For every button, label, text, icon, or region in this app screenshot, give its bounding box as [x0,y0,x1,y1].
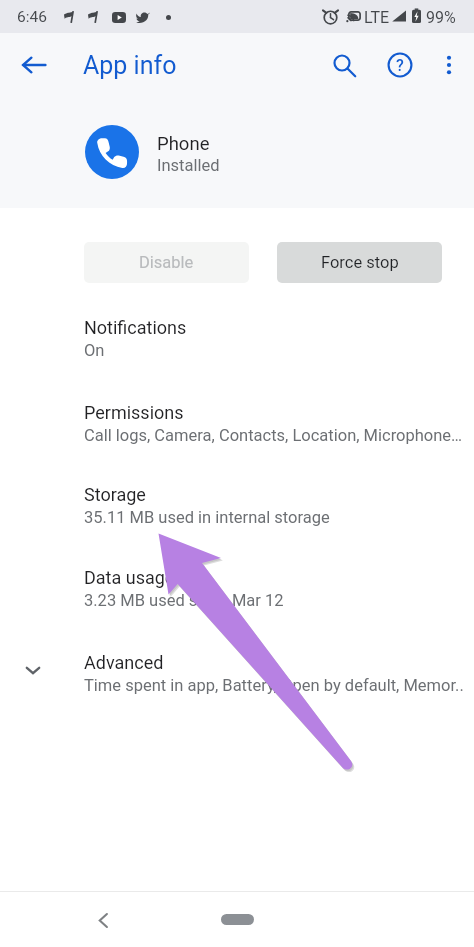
staticText: 99% [426,8,456,27]
button[interactable]: Permissions [0,390,474,465]
staticText: Time spent in app, Battery, Open by defa… [84,676,464,695]
button[interactable]: Help [382,47,418,83]
button[interactable]: More options [431,47,467,83]
staticText: Storage [84,484,146,505]
button[interactable]: Search [326,47,362,83]
staticText: Permissions [84,402,184,423]
staticText: Notifications [84,317,187,338]
button[interactable]: Advanced [0,640,474,715]
staticText: 35.11 MB used in internal storage [84,508,330,527]
staticText: Installed [157,156,220,175]
staticText: Force stop [321,253,399,272]
button[interactable]: Force stop [277,242,442,283]
staticText: LTE [364,8,390,27]
button[interactable]: Storage [0,472,474,547]
staticText: Data usage [84,567,175,588]
button[interactable]: Back [86,903,120,937]
staticText: Call logs, Camera, Contacts, Location, M… [84,426,463,445]
button[interactable]: Data usage [0,555,474,630]
staticText: 3.23 MB used since Mar 12 [84,591,284,610]
staticText: App info [83,51,177,80]
staticText: Phone [157,133,210,155]
button[interactable]: Home [221,914,254,925]
staticText: 6:46 [17,8,47,26]
staticText: Disable [139,253,194,272]
staticText: Advanced [84,652,164,673]
button[interactable]: Disable [84,242,249,283]
staticText: ? [396,56,404,75]
staticText: On [84,341,105,360]
button[interactable]: Back [16,47,52,83]
button[interactable]: Notifications [0,305,474,380]
